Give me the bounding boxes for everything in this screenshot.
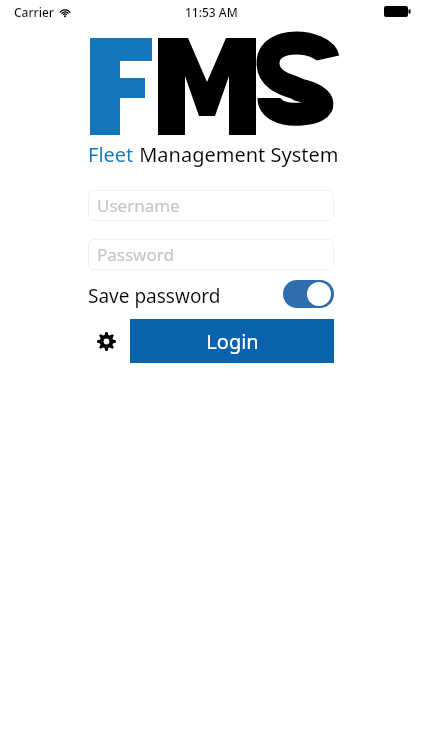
staticText: 11:53 AM (185, 4, 238, 20)
button[interactable]: Username (88, 190, 334, 221)
staticText: Carrier (14, 4, 54, 20)
staticText: Password (97, 243, 174, 266)
button[interactable]: Save password toggle, on (283, 280, 334, 308)
staticText: Fleet (88, 141, 134, 168)
staticText: Save password (88, 283, 221, 309)
button[interactable]: Settings (94, 329, 118, 353)
staticText: Management System (134, 141, 339, 168)
staticText: Username (97, 194, 180, 217)
button[interactable]: Password (88, 239, 334, 270)
staticText: Login (206, 328, 259, 355)
button[interactable]: Login (130, 319, 334, 363)
